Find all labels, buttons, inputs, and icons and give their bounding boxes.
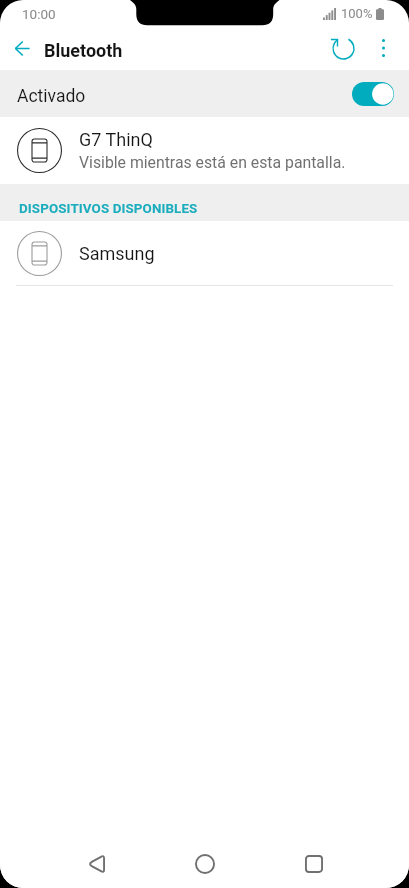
button[interactable]: More options bbox=[361, 26, 405, 70]
button[interactable]: G7 ThinQ bbox=[0, 117, 409, 184]
button[interactable]: Back bbox=[73, 841, 119, 887]
button[interactable]: Home bbox=[182, 841, 228, 887]
button[interactable]: Recents bbox=[291, 841, 337, 887]
staticText: 100% bbox=[341, 6, 373, 21]
button[interactable]: Refresh bbox=[321, 26, 365, 70]
button[interactable]: Back bbox=[0, 26, 44, 70]
staticText: Activado bbox=[17, 86, 86, 107]
staticText: 10:00 bbox=[22, 6, 56, 22]
button[interactable]: Activado bbox=[0, 70, 409, 117]
staticText: Samsung bbox=[79, 243, 155, 264]
staticText: Bluetooth bbox=[44, 40, 123, 61]
staticText: DISPOSITIVOS DISPONIBLES bbox=[19, 201, 198, 217]
staticText: G7 ThinQ bbox=[79, 129, 153, 150]
button[interactable]: Samsung bbox=[0, 221, 409, 285]
staticText: Visible mientras está en esta pantalla. bbox=[79, 153, 346, 172]
